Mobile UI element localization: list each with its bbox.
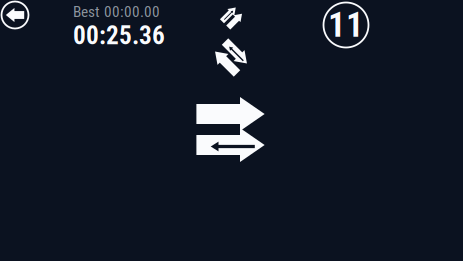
staticText: 00:25.36: [73, 21, 165, 50]
staticText: 11: [328, 5, 364, 45]
button[interactable]: Back: [0, 0, 31, 31]
staticText: Best 00:00.00: [73, 3, 160, 21]
